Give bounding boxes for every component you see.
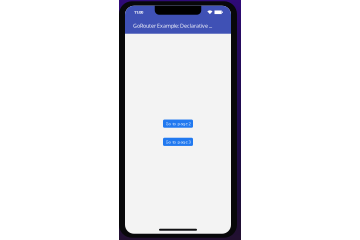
button[interactable]: Go to page 2 — [163, 119, 193, 128]
button[interactable]: Go to page 3 — [163, 138, 193, 146]
staticText: Go to page 3 — [165, 139, 190, 145]
staticText: 11:00 — [134, 9, 143, 15]
staticText: Go to page 2 — [165, 121, 190, 126]
staticText: GoRouter Example: Declarative ... — [133, 22, 212, 29]
